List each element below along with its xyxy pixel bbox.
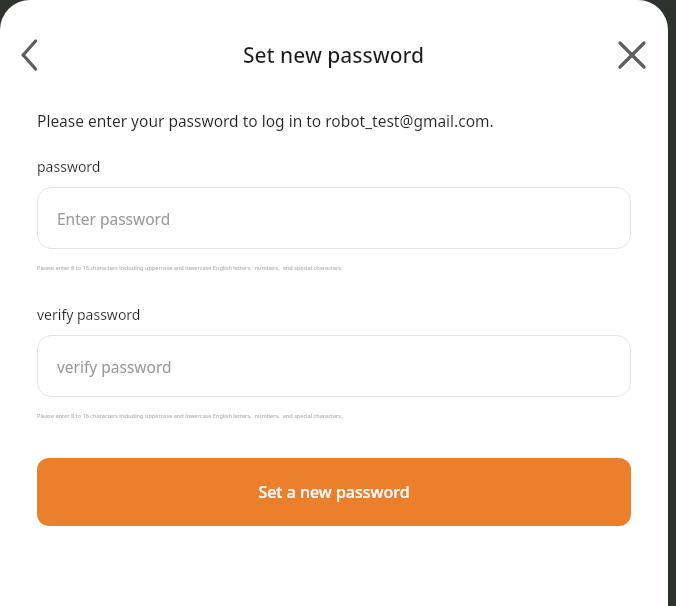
button[interactable]: Close xyxy=(610,33,654,77)
staticText: Please enter 8 to 16 characters includin… xyxy=(37,264,343,272)
button[interactable]: Enter password xyxy=(37,187,631,249)
staticText: Enter password xyxy=(57,208,171,229)
staticText: verify password xyxy=(57,356,172,377)
staticText: Please enter your password to log in to … xyxy=(37,110,494,131)
staticText: password xyxy=(37,157,101,176)
button[interactable]: verify password xyxy=(37,335,631,397)
staticText: Set a new password xyxy=(258,481,410,503)
button[interactable]: Set a new password xyxy=(37,458,631,526)
staticText: Please enter 8 to 16 characters includin… xyxy=(37,412,343,420)
staticText: verify password xyxy=(37,305,141,324)
staticText: Set new password xyxy=(243,41,425,70)
button[interactable]: Back xyxy=(8,33,52,77)
